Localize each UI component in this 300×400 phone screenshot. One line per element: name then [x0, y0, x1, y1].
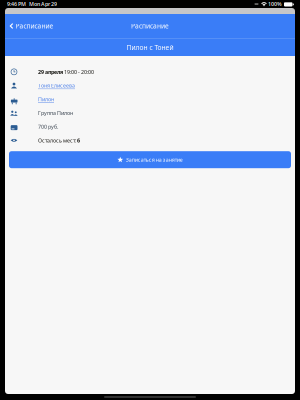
staticText: 9:46 PM Mon Apr 29	[7, 0, 57, 8]
staticText: 29 апреля 19:00 - 20:00	[38, 68, 94, 75]
staticText: 100%	[267, 0, 282, 8]
button[interactable]: Тоня Елисеева	[38, 82, 75, 89]
staticText: Осталось мест: 6	[38, 137, 80, 144]
staticText: Расписание	[131, 22, 169, 30]
staticText: 700 руб.	[38, 123, 58, 130]
staticText: Расписание	[16, 22, 54, 30]
staticText: Пилон с Тоней	[126, 43, 173, 52]
staticText: Пилон	[38, 96, 54, 103]
button[interactable]: Пилон	[38, 96, 54, 103]
button[interactable]: Расписание	[5, 19, 58, 33]
staticText: Записаться на занятие	[126, 156, 183, 163]
button[interactable]: Записаться на занятие	[9, 151, 291, 168]
staticText: Группа Пилон	[38, 109, 73, 116]
staticText: Тоня Елисеева	[38, 82, 75, 89]
